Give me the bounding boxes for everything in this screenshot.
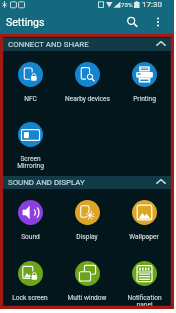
button[interactable]: Display: [58, 200, 116, 241]
button[interactable]: Lock screen: [1, 261, 59, 302]
staticText: panel: [136, 301, 153, 309]
button[interactable]: More options: [149, 13, 167, 31]
staticText: Sound: [21, 233, 40, 241]
staticText: Lock screen: [12, 294, 48, 302]
button[interactable]: Nearby devices: [58, 62, 116, 103]
button[interactable]: Search: [123, 13, 141, 31]
staticText: Mirroring: [17, 162, 44, 170]
staticText: 17:30: [142, 0, 162, 9]
staticText: Multi window: [67, 294, 107, 302]
staticText: Printing: [133, 95, 156, 103]
staticText: SOUND AND DISPLAY: [8, 178, 85, 187]
staticText: Notification: [127, 294, 162, 302]
staticText: Wallpaper: [129, 233, 159, 241]
button[interactable]: Printing: [115, 62, 173, 103]
staticText: NFC: [24, 95, 37, 103]
button[interactable]: Sound: [1, 200, 59, 241]
button[interactable]: Multi window: [58, 261, 116, 302]
staticText: Display: [76, 233, 98, 241]
button[interactable]: CONNECT AND SHARE: [3, 38, 171, 51]
button[interactable]: SOUND AND DISPLAY: [3, 176, 171, 189]
button[interactable]: Notification: [115, 261, 173, 310]
button[interactable]: NFC: [1, 62, 59, 103]
staticText: CONNECT AND SHARE: [8, 40, 89, 49]
button[interactable]: Wallpaper: [115, 200, 173, 241]
staticText: Nearby devices: [65, 95, 110, 103]
staticText: 73%: [121, 1, 133, 8]
staticText: Screen: [20, 155, 41, 163]
button[interactable]: Screen: [1, 122, 59, 171]
staticText: Settings: [6, 16, 45, 28]
